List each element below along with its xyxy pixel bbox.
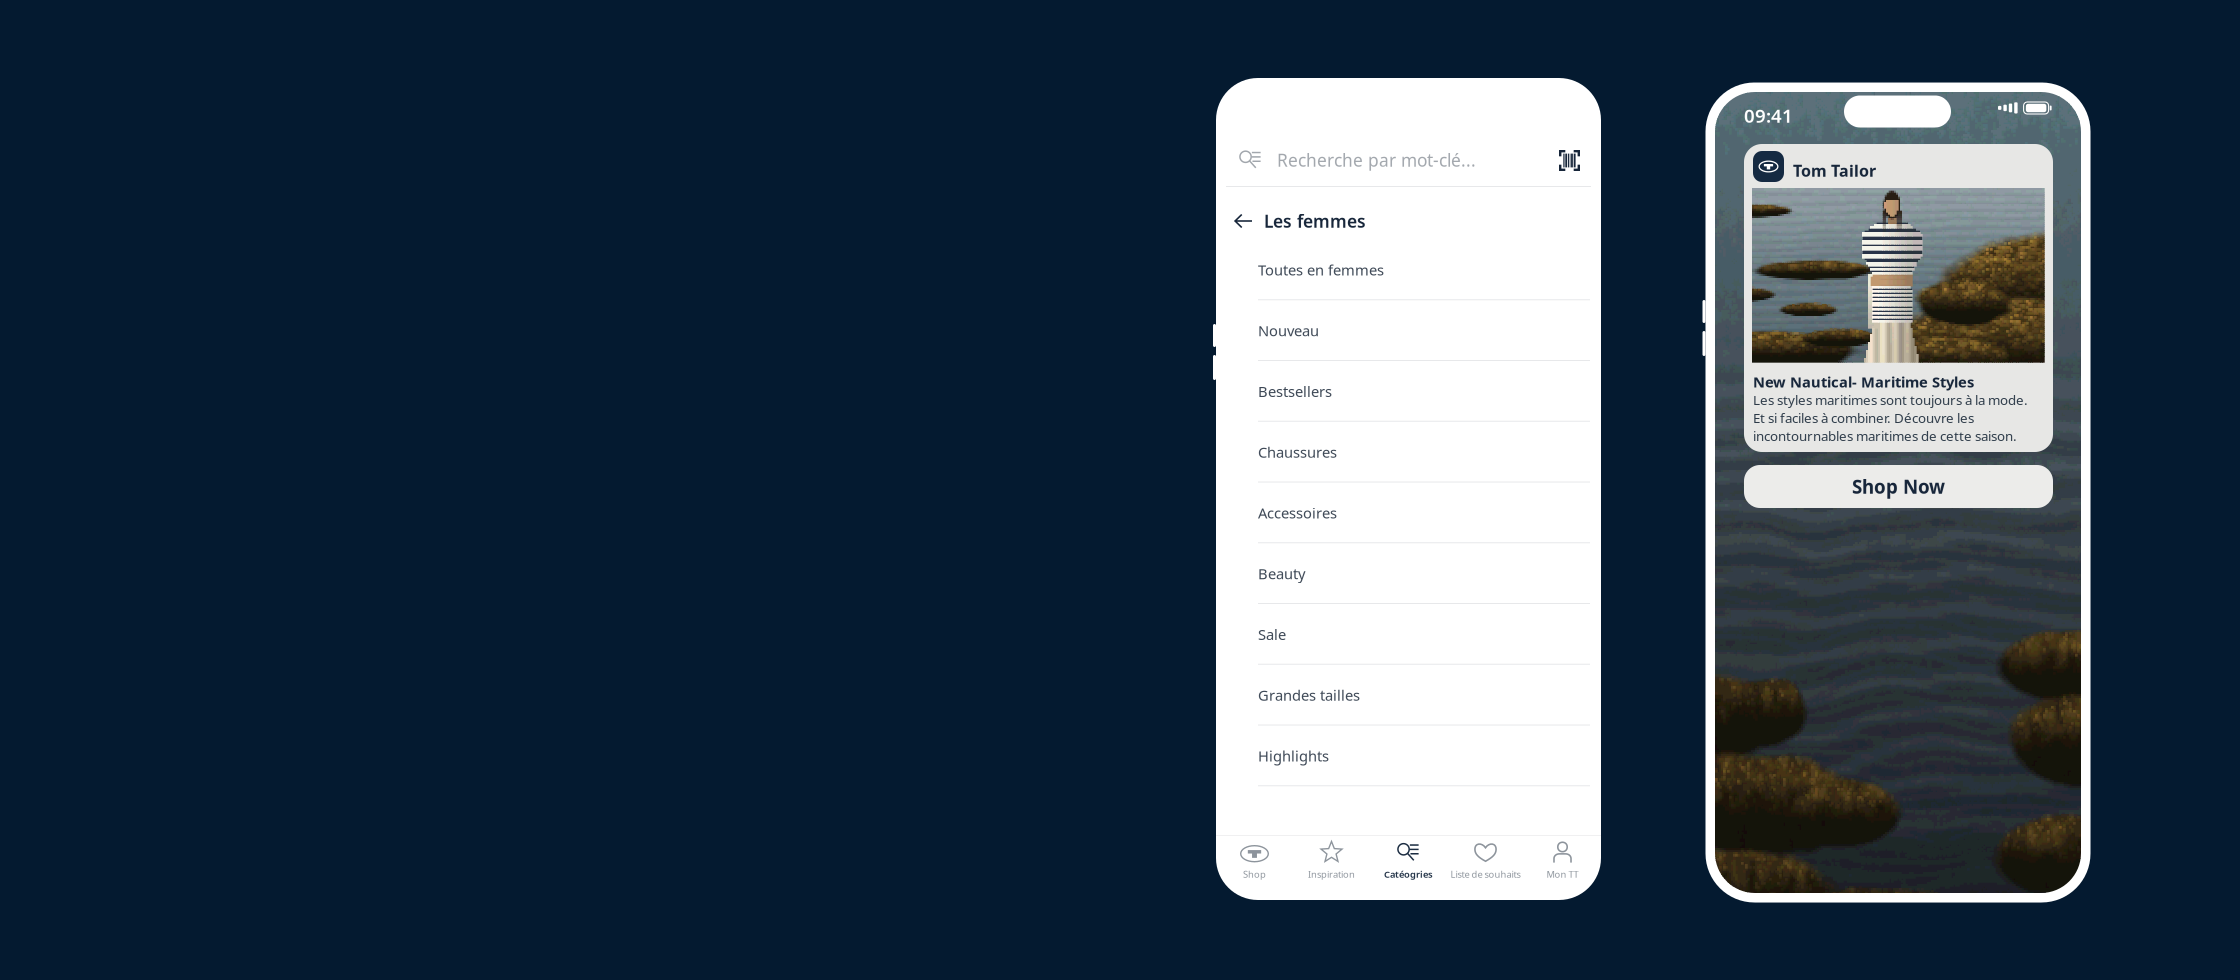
button[interactable]: Chaussures (1258, 422, 1590, 483)
button[interactable]: Highlights (1258, 725, 1590, 786)
button[interactable]: Sale (1258, 604, 1590, 665)
staticText: Sale (1258, 625, 1286, 644)
staticText: New Nautical- Maritime Styles (1753, 372, 1974, 391)
staticText: Liste de souhaits (1450, 868, 1520, 880)
button[interactable]: Catéogries (1370, 841, 1447, 885)
staticText: Tom Tailor (1793, 160, 1876, 181)
staticText: Highlights (1258, 746, 1329, 766)
button[interactable]: Nouveau (1258, 300, 1590, 361)
button[interactable]: Shop (1216, 841, 1293, 885)
button[interactable]: Inspiration (1293, 841, 1370, 885)
staticText: Toutes en femmes (1258, 260, 1384, 280)
staticText: Nouveau (1258, 321, 1319, 340)
button[interactable]: Beauty (1258, 543, 1590, 604)
button[interactable]: Toutes en femmes (1258, 239, 1590, 300)
staticText: incontournables maritimes de cette saiso… (1753, 427, 2017, 445)
button[interactable]: Les femmes (1234, 206, 1564, 236)
staticText: 09:41 (1744, 103, 1793, 128)
staticText: Shop Now (1852, 474, 1945, 499)
staticText: Shop (1243, 868, 1266, 880)
staticText: Les styles maritimes sont toujours à la … (1753, 391, 2028, 409)
staticText: Grandes tailles (1258, 685, 1360, 705)
staticText: Catéogries (1384, 868, 1433, 880)
staticText: Et si faciles à combiner. Découvre les (1753, 409, 1974, 427)
button[interactable]: Scan barcode (1559, 150, 1580, 171)
staticText: Inspiration (1308, 868, 1355, 880)
staticText: Bestsellers (1258, 382, 1332, 401)
button[interactable]: Shop Now (1744, 465, 2053, 508)
button[interactable]: Bestsellers (1258, 361, 1590, 422)
button[interactable]: Grandes tailles (1258, 665, 1590, 726)
staticText: Beauty (1258, 564, 1305, 583)
staticText: Chaussures (1258, 442, 1337, 462)
staticText: Recherche par mot-clé... (1277, 148, 1476, 171)
button[interactable]: Accessoires (1258, 482, 1590, 543)
staticText: Mon TT (1546, 868, 1578, 880)
button[interactable]: Tom Tailor (1744, 144, 2053, 452)
button[interactable]: Mon TT (1524, 841, 1601, 885)
staticText: Les femmes (1264, 209, 1366, 232)
button[interactable]: Liste de souhaits (1447, 841, 1524, 885)
staticText: Accessoires (1258, 503, 1337, 523)
button[interactable]: Recherche par mot-clé... (1239, 145, 1539, 175)
